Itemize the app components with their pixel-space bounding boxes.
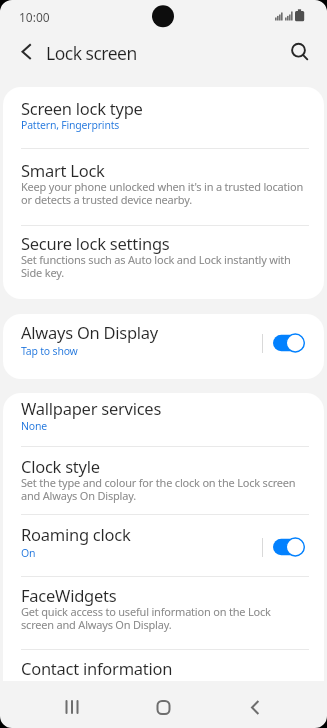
- button[interactable]: Clock style: [3, 447, 324, 514]
- staticText: Always On Display: [21, 321, 159, 343]
- staticText: Pattern, Fingerprints: [21, 118, 120, 132]
- staticText: Get quick access to useful information o…: [21, 604, 271, 632]
- staticText: Clock style: [21, 455, 100, 477]
- button[interactable]: [8, 38, 46, 76]
- staticText: Contact information: [21, 657, 173, 679]
- button[interactable]: Roaming clock: [3, 515, 324, 576]
- button[interactable]: Screen lock type: [3, 87, 324, 148]
- button[interactable]: Contact information: [3, 650, 324, 681]
- staticText: Screen lock type: [21, 97, 143, 119]
- button[interactable]: [232, 687, 278, 727]
- button[interactable]: FaceWidgets: [3, 577, 324, 649]
- staticText: On: [21, 546, 36, 560]
- staticText: Set the type and colour for the clock on…: [21, 475, 296, 503]
- staticText: Secure lock settings: [21, 232, 170, 254]
- staticText: Roaming clock: [21, 523, 131, 545]
- button[interactable]: Always On Display: [3, 314, 324, 379]
- staticText: Keep your phone unlocked when it's in a …: [21, 179, 303, 207]
- staticText: Tap to show: [21, 344, 78, 358]
- staticText: None: [21, 419, 47, 433]
- button[interactable]: Secure lock settings: [3, 226, 324, 299]
- staticText: 10:00: [19, 9, 50, 25]
- staticText: Set functions such as Auto lock and Lock…: [21, 252, 291, 280]
- button[interactable]: Smart Lock: [3, 149, 324, 225]
- button[interactable]: [140, 687, 186, 727]
- staticText: FaceWidgets: [21, 584, 117, 606]
- staticText: Wallpaper services: [21, 397, 162, 419]
- button[interactable]: [279, 36, 319, 76]
- button[interactable]: Wallpaper services: [3, 393, 324, 446]
- staticText: Smart Lock: [21, 159, 105, 181]
- button[interactable]: [49, 687, 95, 727]
- staticText: Lock screen: [46, 41, 137, 65]
